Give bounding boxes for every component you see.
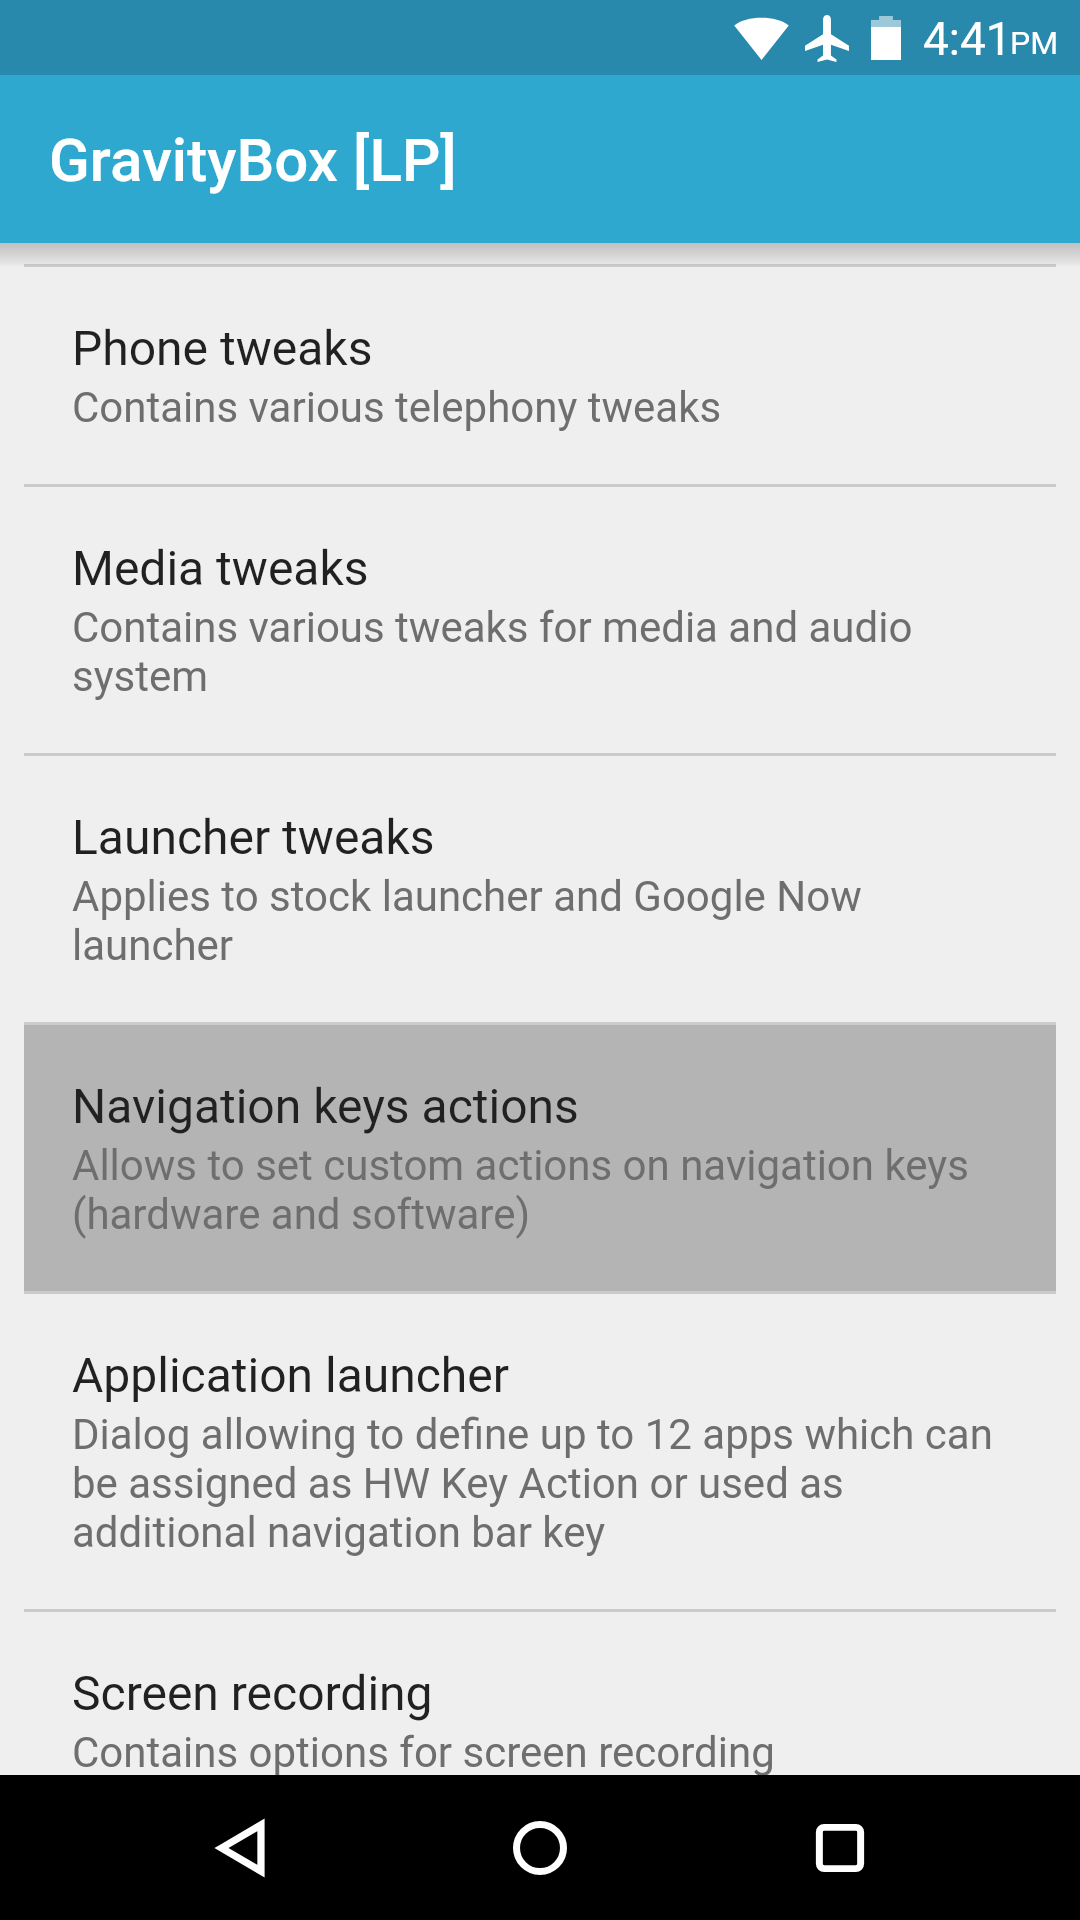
button[interactable]: Recent apps xyxy=(750,1775,930,1920)
staticText: Contains various tweaks for media and au… xyxy=(72,603,1022,701)
staticText: Application launcher xyxy=(72,1347,509,1403)
staticText: Screen recording xyxy=(72,1665,433,1721)
button[interactable]: Media tweaks xyxy=(0,487,1080,753)
button[interactable]: Phone tweaks xyxy=(0,267,1080,484)
staticText: Allows to set custom actions on navigati… xyxy=(72,1141,1022,1239)
button[interactable]: Navigation keys actions xyxy=(24,1025,1056,1291)
button[interactable]: Back xyxy=(153,1775,333,1920)
staticText: 4:41 xyxy=(923,12,1012,66)
staticText: Phone tweaks xyxy=(72,320,373,376)
button[interactable]: Launcher tweaks xyxy=(0,756,1080,1022)
staticText: Navigation keys actions xyxy=(72,1078,579,1134)
button[interactable]: Screen recording xyxy=(0,1612,1080,1775)
staticText: Contains various telephony tweaks xyxy=(72,383,722,432)
staticText: PM xyxy=(1010,24,1059,62)
staticText: Applies to stock launcher and Google Now… xyxy=(72,872,1022,970)
button[interactable]: Application launcher xyxy=(0,1294,1080,1609)
staticText: Launcher tweaks xyxy=(72,809,435,865)
button[interactable]: Home xyxy=(450,1775,630,1920)
staticText: Dialog allowing to define up to 12 apps … xyxy=(72,1410,1022,1557)
staticText: GravityBox [LP] xyxy=(49,125,457,195)
staticText: Media tweaks xyxy=(72,540,369,596)
staticText: Contains options for screen recording xyxy=(72,1728,775,1775)
